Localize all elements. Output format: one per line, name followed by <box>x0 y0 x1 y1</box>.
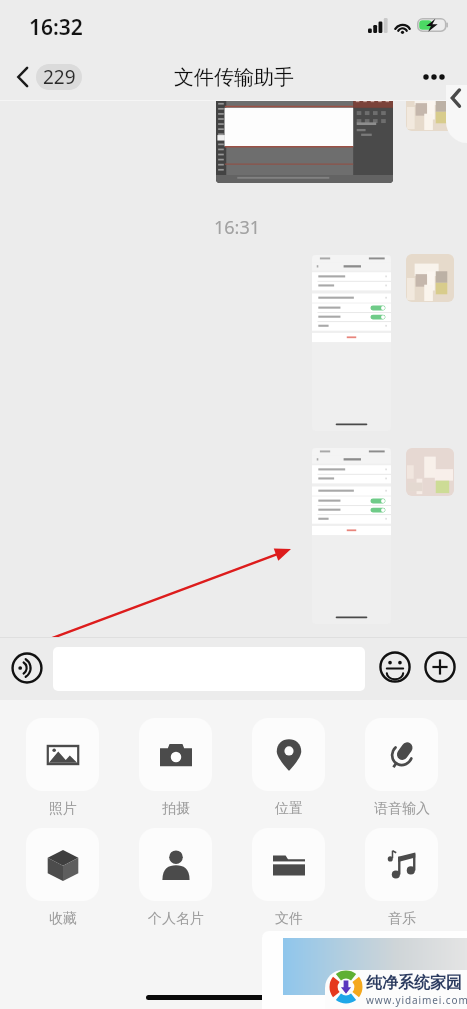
staticText: 语音输入 <box>374 800 430 818</box>
button[interactable]: Voice input <box>10 651 44 685</box>
staticText: 收藏 <box>49 910 77 928</box>
button[interactable]: 语音输入 <box>357 718 446 818</box>
staticText: 位置 <box>275 800 303 818</box>
staticText: 个人名片 <box>148 910 204 928</box>
staticText: 文件 <box>275 910 303 928</box>
button[interactable]: Back to previous app <box>446 85 467 143</box>
button[interactable]: 照片 <box>18 718 107 818</box>
button[interactable]: Screenshot image <box>312 448 391 624</box>
staticText: 纯净系统家园 <box>366 973 462 993</box>
button[interactable]: 音乐 <box>357 828 446 928</box>
staticText: 16:31 <box>214 215 261 240</box>
staticText: 照片 <box>49 800 77 818</box>
staticText: 文件传输助手 <box>174 65 294 90</box>
button[interactable]: Screenshot image <box>312 255 391 431</box>
staticText: 16:32 <box>29 13 83 42</box>
button[interactable]: 位置 <box>244 718 333 818</box>
button[interactable]: 收藏 <box>18 828 107 928</box>
button[interactable]: More options <box>412 57 456 97</box>
button[interactable]: 拍摄 <box>131 718 220 818</box>
button[interactable]: 个人名片 <box>131 828 220 928</box>
staticText: 229 <box>43 64 76 90</box>
button[interactable]: 文件 <box>244 828 333 928</box>
button[interactable]: Screenshot image <box>216 101 393 183</box>
staticText: 音乐 <box>388 910 416 928</box>
staticText: 拍摄 <box>162 800 190 818</box>
button[interactable]: More actions <box>424 651 456 683</box>
staticText: www.yidaimei.com <box>366 993 467 1007</box>
button[interactable]: Emoji <box>379 651 411 683</box>
button[interactable]: Back, 229 unread <box>9 60 90 94</box>
